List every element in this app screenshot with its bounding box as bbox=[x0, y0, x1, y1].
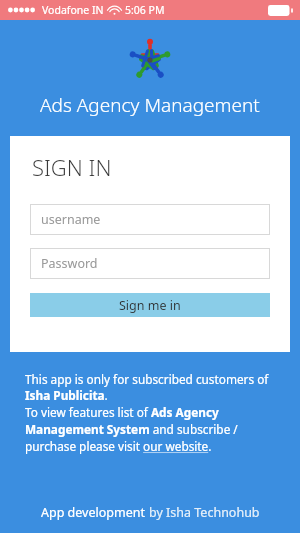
staticText: Ads Agency Management bbox=[40, 92, 260, 118]
staticText: by Isha Technohub bbox=[149, 504, 260, 521]
staticText: This app is only for subscribed customer… bbox=[25, 371, 282, 455]
staticText: Vodafone IN bbox=[42, 3, 104, 17]
staticText: Password bbox=[41, 255, 98, 272]
button[interactable]: username bbox=[30, 204, 270, 235]
staticText: Sign me in bbox=[119, 297, 181, 314]
staticText: username bbox=[41, 211, 101, 228]
staticText: App development bbox=[41, 504, 149, 521]
staticText: 5:06 PM bbox=[125, 3, 165, 17]
staticText: SIGN IN bbox=[32, 152, 112, 182]
button[interactable]: Password bbox=[30, 248, 270, 279]
button[interactable]: Sign me in bbox=[30, 293, 270, 317]
